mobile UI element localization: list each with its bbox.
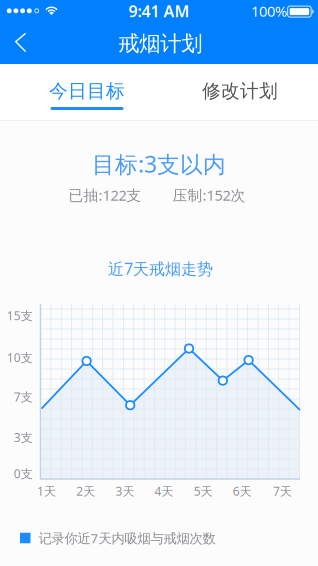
staticText: 目标:3支以内 <box>92 149 226 179</box>
staticText: 0支 <box>14 465 33 481</box>
staticText: 戒烟计划 <box>118 30 202 57</box>
staticText: 3支 <box>14 429 33 445</box>
staticText: 近7天戒烟走势 <box>108 258 213 279</box>
staticText: 5天 <box>194 483 213 499</box>
staticText: 7支 <box>14 389 33 405</box>
button[interactable]: 修改计划 <box>159 64 318 120</box>
staticText: 7天 <box>273 483 292 499</box>
staticText: 15支 <box>7 307 33 323</box>
staticText: 压制:152次 <box>172 185 245 205</box>
staticText: 10支 <box>7 349 33 365</box>
staticText: 4天 <box>154 483 173 499</box>
staticText: 9:41 AM <box>128 0 189 22</box>
staticText: 3天 <box>115 483 134 499</box>
staticText: 6天 <box>233 483 252 499</box>
button[interactable]: Back <box>10 20 44 64</box>
staticText: 修改计划 <box>202 79 278 102</box>
button[interactable]: 今日目标 <box>0 64 159 120</box>
staticText: 1天 <box>37 483 56 499</box>
staticText: 已抽:122支 <box>68 185 141 205</box>
staticText: 100% <box>251 1 287 21</box>
staticText: 记录你近7天内吸烟与戒烟次数 <box>38 529 215 547</box>
staticText: 2天 <box>76 483 95 499</box>
staticText: 今日目标 <box>49 79 125 102</box>
